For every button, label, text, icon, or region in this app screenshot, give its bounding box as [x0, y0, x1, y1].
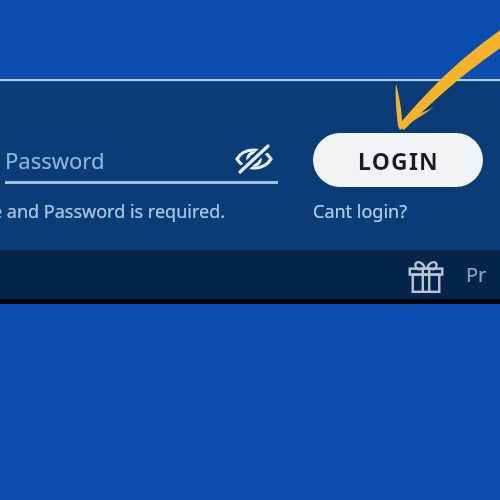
- button[interactable]: Cant login?: [311, 196, 431, 224]
- staticText: Pr: [466, 261, 487, 288]
- button[interactable]: LOGIN: [313, 133, 483, 187]
- button[interactable]: Promotions: [404, 252, 448, 298]
- staticText: LOGIN: [358, 145, 439, 176]
- staticText: Password: [5, 145, 105, 175]
- staticText: Cant login?: [313, 199, 407, 224]
- staticText: e and Password is required.: [0, 199, 226, 224]
- button[interactable]: Show password: [230, 139, 278, 179]
- button[interactable]: Password: [0, 134, 280, 186]
